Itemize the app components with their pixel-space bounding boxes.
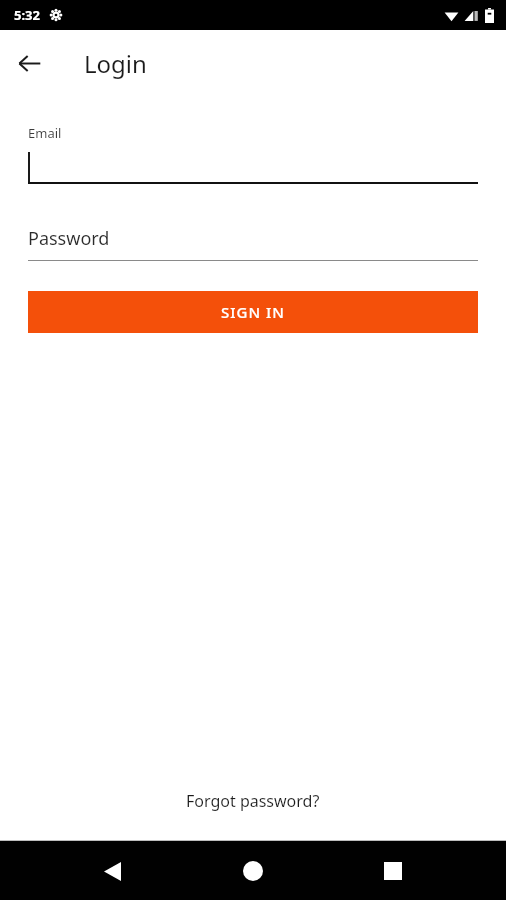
button[interactable]: Email (28, 124, 478, 184)
button[interactable]: Back (6, 40, 52, 86)
staticText: SIGN IN (221, 302, 285, 322)
button[interactable]: Back (88, 847, 136, 895)
button[interactable]: Home (229, 847, 277, 895)
staticText: Password (28, 226, 110, 251)
staticText: Login (84, 47, 147, 80)
staticText: Email (28, 124, 62, 142)
button[interactable]: Forgot password? (170, 784, 336, 818)
button[interactable]: Recent apps (369, 847, 417, 895)
button[interactable]: Password (28, 226, 478, 261)
staticText: 5:32 (14, 6, 40, 24)
staticText: Forgot password? (186, 790, 320, 812)
button[interactable]: SIGN IN (28, 291, 478, 333)
